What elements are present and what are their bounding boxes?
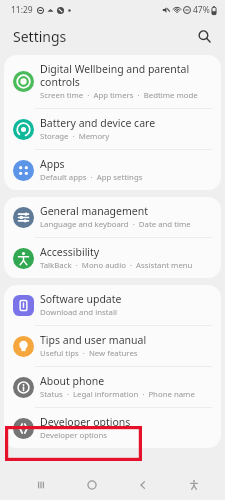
staticText: Useful tips · New features — [40, 348, 138, 359]
staticText: Developer options — [40, 430, 108, 441]
staticText: Settings — [13, 27, 67, 46]
staticText: Apps — [40, 157, 65, 171]
staticText: Software update — [40, 292, 122, 306]
staticText: TalkBack · Mono audio · Assistant menu — [40, 260, 193, 271]
staticText: Digital Wellbeing and parental controls — [40, 62, 212, 89]
staticText: Storage · Memory — [40, 131, 110, 142]
button[interactable]: Apps — [4, 150, 221, 190]
button[interactable]: Accessibility shortcut — [179, 470, 209, 500]
staticText: Status · Legal information · Phone name — [40, 389, 195, 400]
staticText: Battery and device care — [40, 116, 156, 130]
button[interactable]: Digital Wellbeing and parental controls — [4, 55, 221, 108]
staticText: Download and install — [40, 307, 117, 318]
button[interactable]: Accessibility — [4, 238, 221, 278]
staticText: About phone — [40, 374, 105, 388]
staticText: Accessibility — [40, 245, 100, 259]
button[interactable]: Back — [128, 470, 158, 500]
staticText: 11:29 — [11, 4, 33, 16]
staticText: Default apps · App settings — [40, 172, 143, 183]
staticText: 47% — [193, 4, 210, 16]
staticText: Developer options — [40, 415, 131, 429]
button[interactable]: Tips and user manual — [4, 326, 221, 366]
button[interactable]: Search — [191, 23, 217, 49]
button[interactable]: Developer options — [4, 408, 221, 448]
button[interactable]: Recent apps — [26, 470, 56, 500]
staticText: Screen time · App timers · Bedtime mode — [40, 90, 198, 101]
button[interactable]: Battery and device care — [4, 109, 221, 149]
button[interactable]: About phone — [4, 367, 221, 407]
staticText: Tips and user manual — [40, 333, 147, 347]
button[interactable]: General management — [4, 197, 221, 237]
staticText: General management — [40, 204, 148, 218]
staticText: Language and keyboard · Date and time — [40, 219, 191, 230]
button[interactable]: Software update — [4, 285, 221, 325]
button[interactable]: Home — [77, 470, 107, 500]
